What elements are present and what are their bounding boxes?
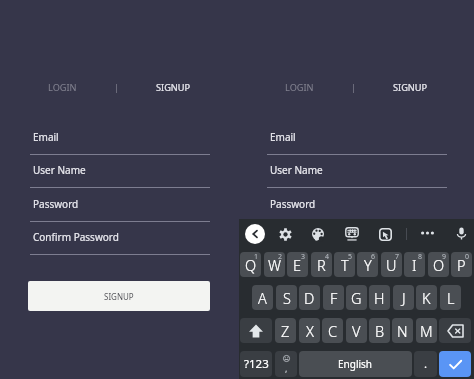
button[interactable]: I (404, 252, 425, 277)
staticText: 6 (371, 252, 376, 262)
staticText: 5 (348, 252, 353, 262)
button[interactable]: More options (415, 221, 439, 245)
button[interactable]: K (416, 285, 437, 310)
staticText: Z (281, 321, 290, 341)
staticText: C (328, 321, 338, 341)
button[interactable]: Backspace (439, 318, 471, 343)
button[interactable]: U (381, 252, 402, 277)
staticText: A (258, 288, 267, 308)
staticText: User Name (33, 163, 86, 177)
button[interactable]: SIGNUP (28, 281, 210, 311)
button[interactable]: Password (267, 193, 447, 222)
button[interactable]: SIGNUP (390, 78, 430, 96)
button[interactable]: N (392, 318, 413, 343)
staticText: SIGNUP (104, 291, 134, 302)
button[interactable]: A (252, 285, 273, 310)
button[interactable]: D (299, 285, 320, 310)
button[interactable]: E (287, 252, 308, 277)
button[interactable]: Email (30, 126, 210, 155)
staticText: H (374, 288, 385, 308)
staticText: English (338, 357, 373, 371)
staticText: J (402, 288, 406, 308)
button[interactable]: M (416, 318, 437, 343)
button[interactable]: Themes (306, 222, 330, 246)
staticText: 4 (325, 252, 330, 262)
button[interactable]: R (311, 252, 332, 277)
button[interactable]: Voice input (449, 221, 473, 245)
button[interactable]: X (299, 318, 320, 343)
button[interactable]: User Name (30, 159, 210, 188)
staticText: F (330, 288, 338, 308)
staticText: B (375, 321, 385, 341)
button[interactable]: Y (357, 252, 378, 277)
staticText: SIGNUP (393, 81, 428, 94)
staticText: 7 (395, 252, 400, 262)
button[interactable]: B (369, 318, 390, 343)
staticText: Q (245, 255, 257, 275)
button[interactable]: P (451, 252, 472, 277)
button[interactable]: . (414, 351, 437, 377)
staticText: ?123 (244, 356, 269, 372)
staticText: 8 (418, 252, 423, 262)
button[interactable]: SIGNUP (153, 78, 193, 96)
button[interactable]: G (346, 285, 367, 310)
staticText: U (386, 255, 397, 275)
staticText: Confirm Password (33, 230, 119, 244)
button[interactable]: Handwriting (373, 222, 397, 246)
button[interactable]: LOGIN (44, 78, 81, 96)
staticText: R (317, 255, 326, 275)
staticText: M (420, 321, 433, 341)
button[interactable]: T (334, 252, 355, 277)
button[interactable]: User Name (267, 159, 447, 188)
button[interactable]: C (322, 318, 343, 343)
button[interactable]: Email (267, 126, 447, 155)
button[interactable]: Confirm Password (267, 226, 447, 255)
staticText: X (306, 321, 314, 341)
button[interactable]: O (428, 252, 449, 277)
staticText: LOGIN (285, 81, 314, 94)
staticText: LOGIN (48, 81, 77, 94)
staticText: Y (364, 255, 372, 275)
button[interactable]: Hide keyboard toolbar (245, 224, 265, 244)
button[interactable]: English (299, 351, 412, 377)
button[interactable]: Password (30, 193, 210, 222)
staticText: SIGNUP (341, 291, 371, 302)
staticText: Confirm Password (270, 230, 356, 244)
button[interactable]: Settings (273, 222, 297, 246)
staticText: K (422, 288, 431, 308)
staticText: Password (270, 197, 316, 211)
staticText: . (424, 356, 428, 372)
button[interactable]: ?123 (240, 351, 272, 377)
staticText: 0 (465, 252, 470, 262)
button[interactable]: W (264, 252, 285, 277)
staticText: User Name (270, 163, 323, 177)
staticText: G (351, 288, 362, 308)
staticText: S (283, 288, 291, 308)
staticText: D (304, 288, 315, 308)
button[interactable]: Q (240, 252, 261, 277)
staticText: 2 (278, 252, 283, 262)
button[interactable]: V (346, 318, 367, 343)
staticText: T (341, 255, 349, 275)
button[interactable]: SIGNUP (265, 281, 447, 311)
staticText: SIGNUP (156, 81, 191, 94)
button[interactable]: F (323, 285, 344, 310)
staticText: E (293, 255, 302, 275)
button[interactable]: L (440, 285, 461, 310)
button[interactable]: Emoji and comma (275, 351, 297, 377)
button[interactable]: S (276, 285, 297, 310)
staticText: 1 (254, 252, 259, 262)
staticText: 9 (442, 252, 447, 262)
staticText: | (114, 81, 120, 94)
staticText: P (457, 255, 466, 275)
button[interactable]: H (369, 285, 390, 310)
button[interactable]: Z (275, 318, 296, 343)
button[interactable]: Shift (240, 318, 272, 343)
staticText: N (397, 321, 408, 341)
button[interactable]: Stickers (340, 222, 364, 246)
button[interactable]: J (393, 285, 414, 310)
button[interactable]: Confirm Password (30, 226, 210, 255)
staticText: , (285, 362, 288, 374)
button[interactable]: Enter (439, 351, 471, 377)
button[interactable]: LOGIN (281, 78, 318, 96)
